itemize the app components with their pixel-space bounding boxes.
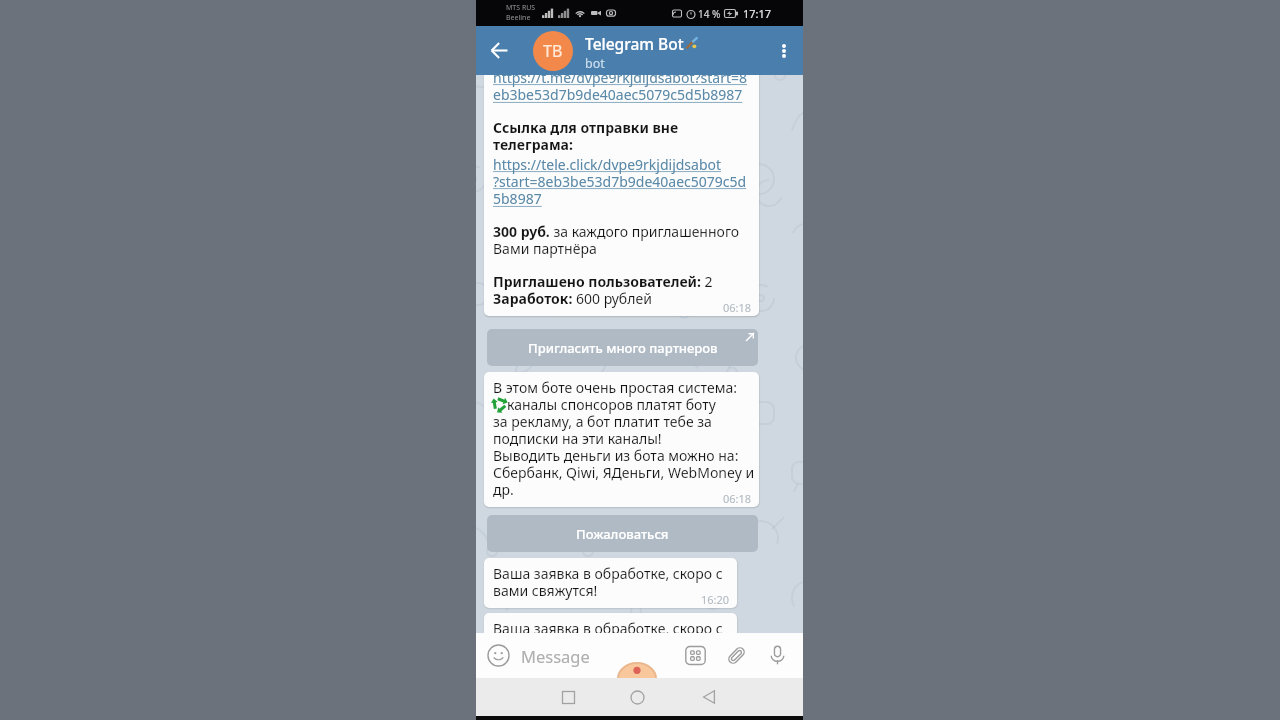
button[interactable]: Emoji xyxy=(487,644,510,667)
button[interactable]: https://t.me/dvpe9rkjdijdsabot?start=8 e… xyxy=(484,75,759,316)
button[interactable]: Back xyxy=(476,26,523,75)
staticText: Ваша заявка в обработке, скоро с вами св… xyxy=(493,564,723,601)
staticText: https://t.me/dvpe9rkjdijdsabot?start=8 e… xyxy=(493,75,748,105)
button[interactable]: Ваша заявка в обработке, скоро с вами св… xyxy=(484,558,737,608)
staticText: В этом боте очень простая система: канал… xyxy=(493,378,755,500)
button[interactable]: Attach xyxy=(726,645,747,666)
staticText: 06:18 xyxy=(723,300,752,315)
staticText: Приглашено пользователей: 2 Заработок: 6… xyxy=(493,272,713,309)
staticText: TB xyxy=(543,40,563,62)
staticText: Beeline xyxy=(506,13,531,23)
staticText: MTS RUS xyxy=(506,3,536,13)
staticText: bot xyxy=(585,55,605,72)
button[interactable]: Пожаловаться xyxy=(487,515,758,552)
button[interactable]: Back xyxy=(687,678,731,716)
button[interactable]: Home xyxy=(615,678,659,716)
staticText: Пригласить много партнеров xyxy=(528,339,718,357)
staticText: Ссылка для отправки вне телеграма: xyxy=(493,118,679,155)
button[interactable]: Пригласить много партнеров xyxy=(487,329,758,366)
staticText: 14 % xyxy=(698,7,721,21)
staticText: Message xyxy=(521,645,590,667)
button[interactable]: More options xyxy=(765,26,803,75)
staticText: https://tele.click/dvpe9rkjdijdsabot ?st… xyxy=(493,155,747,209)
staticText: Пожаловаться xyxy=(576,525,669,543)
staticText: 17:17 xyxy=(743,6,772,21)
staticText: Ваша заявка в обработке, скоро с вами св… xyxy=(493,619,723,633)
button[interactable]: Recents xyxy=(546,678,590,716)
button[interactable]: В этом боте очень простая система: канал… xyxy=(484,372,759,507)
staticText: 16:20 xyxy=(701,592,730,607)
button[interactable]: Ваша заявка в обработке, скоро с вами св… xyxy=(484,613,737,633)
button[interactable]: Voice message xyxy=(767,645,788,666)
staticText: Telegram Bot xyxy=(585,33,684,54)
button[interactable]: Bot commands xyxy=(685,645,706,666)
button[interactable]: Profile photo xyxy=(533,31,573,71)
staticText: 06:18 xyxy=(723,491,752,506)
staticText: 300 руб. за каждого приглашенного Вами п… xyxy=(493,222,740,259)
